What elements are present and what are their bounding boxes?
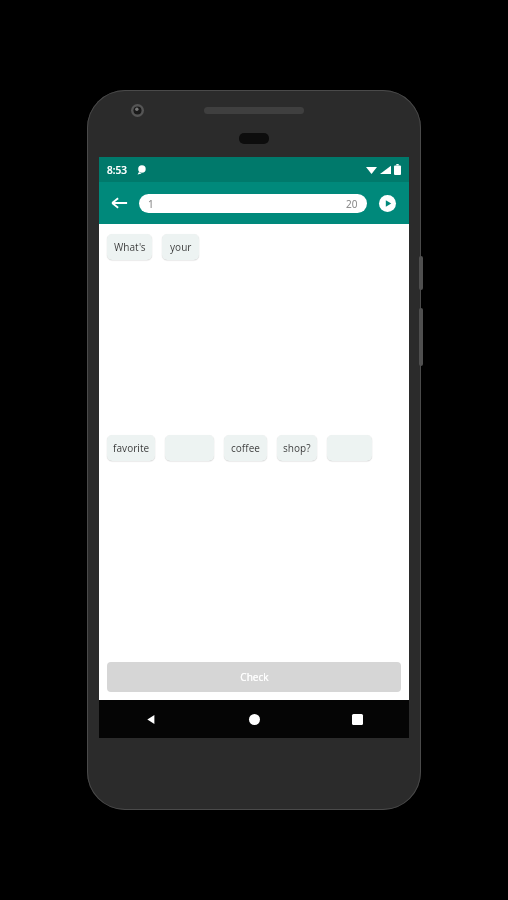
button[interactable]: shop?	[277, 435, 317, 461]
staticText: Check	[240, 670, 269, 684]
button[interactable]: Recent apps	[306, 700, 409, 738]
button[interactable]: Back	[99, 700, 203, 738]
button[interactable]: coffee	[224, 435, 267, 461]
staticText: 8:53	[107, 163, 127, 177]
button[interactable]: 1	[139, 194, 367, 213]
button[interactable]: Back	[99, 183, 139, 223]
staticText: What's	[114, 240, 146, 254]
button[interactable]: favorite	[107, 435, 155, 461]
staticText: shop?	[283, 441, 311, 455]
staticText: your	[170, 240, 192, 254]
button[interactable]: Home	[203, 700, 306, 738]
staticText: coffee	[231, 441, 261, 455]
staticText: 1	[148, 197, 154, 211]
button[interactable]: Check	[107, 662, 401, 692]
button[interactable]: your	[162, 234, 199, 260]
staticText: 20	[346, 197, 358, 211]
button[interactable]: Play audio	[367, 183, 407, 223]
button[interactable]: What's	[107, 234, 152, 260]
staticText: favorite	[113, 441, 150, 455]
